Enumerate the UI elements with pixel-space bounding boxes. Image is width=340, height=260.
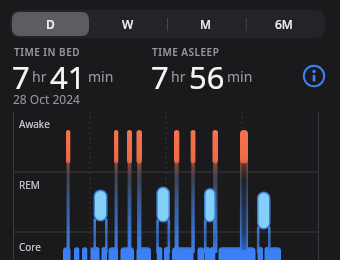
button[interactable] (302, 64, 326, 88)
button[interactable]: W (89, 12, 167, 36)
staticText: 56 (189, 56, 225, 89)
staticText: W (122, 16, 134, 32)
staticText: D (46, 16, 55, 32)
staticText: hr (32, 67, 47, 86)
staticText: 6M (275, 16, 293, 32)
staticText: hr (171, 67, 186, 86)
staticText: 28 Oct 2024 (13, 91, 80, 107)
button[interactable]: D (12, 12, 89, 36)
staticText: Core (19, 240, 41, 254)
staticText: M (200, 16, 212, 32)
staticText: 7 (151, 56, 169, 89)
staticText: Awake (19, 117, 50, 131)
staticText: REM (19, 178, 40, 192)
button[interactable]: M (167, 12, 245, 36)
staticText: 41 (50, 56, 86, 89)
staticText: TIME IN BED (14, 45, 81, 59)
staticText: min (227, 67, 253, 86)
button[interactable]: 6M (245, 12, 323, 36)
staticText: min (88, 67, 114, 86)
staticText: TIME ASLEEP (152, 45, 220, 59)
staticText: 7 (12, 56, 30, 89)
